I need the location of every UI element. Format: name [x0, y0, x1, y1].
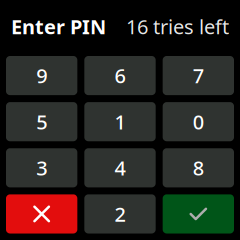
button[interactable]: 8	[163, 148, 234, 187]
staticText: 3	[36, 154, 47, 181]
button[interactable]: 5	[6, 102, 77, 141]
staticText: 5	[36, 108, 47, 135]
button[interactable]: 6	[84, 56, 156, 95]
button[interactable]: 3	[6, 148, 77, 187]
button[interactable]: 0	[163, 102, 234, 141]
button[interactable]: 7	[163, 56, 234, 95]
staticText: 1	[114, 108, 125, 135]
staticText: 2	[114, 201, 125, 227]
button[interactable]: 2	[84, 194, 156, 233]
staticText: 0	[193, 108, 204, 135]
button[interactable]: 1	[84, 102, 156, 141]
staticText: 6	[114, 62, 125, 89]
button[interactable]: 4	[84, 148, 156, 187]
button[interactable]: Confirm	[163, 194, 234, 233]
staticText: 9	[36, 62, 47, 89]
staticText: Enter PIN	[11, 13, 106, 40]
button[interactable]: 9	[6, 56, 77, 95]
staticText: 8	[193, 154, 204, 181]
staticText: 16 tries left	[126, 13, 229, 40]
button[interactable]: Cancel	[6, 194, 77, 233]
staticText: 7	[193, 62, 204, 89]
staticText: 4	[114, 154, 125, 181]
